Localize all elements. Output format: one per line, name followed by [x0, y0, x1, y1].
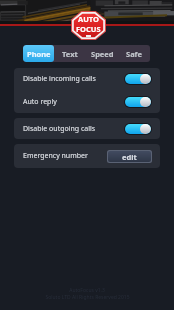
staticText: Safe	[126, 49, 143, 59]
button[interactable]: Disable incoming calls	[14, 68, 160, 90]
button[interactable]: Auto reply	[14, 90, 160, 113]
button[interactable]: Toggle Disable incoming calls	[125, 74, 151, 84]
button[interactable]: Toggle Auto reply	[125, 97, 151, 107]
staticText: FOCUS	[76, 24, 101, 34]
button[interactable]: Text	[54, 45, 86, 62]
button[interactable]: Disable outgoing calls	[14, 118, 160, 139]
staticText: Text	[62, 49, 78, 59]
button[interactable]: Toggle Disable outgoing calls	[125, 124, 151, 134]
staticText: Speed	[91, 49, 114, 59]
button[interactable]: Phone	[23, 45, 54, 62]
staticText: Disable outgoing calls	[23, 124, 96, 134]
staticText: Phone	[27, 49, 51, 59]
button[interactable]: Speed	[86, 45, 118, 62]
staticText: Soluto LTD All Rights Reserved 2015	[45, 294, 130, 301]
staticText: edit	[122, 152, 137, 162]
staticText: Auto reply	[23, 97, 57, 107]
staticText: AutoFocus v1.3	[69, 287, 105, 294]
staticText: Disable incoming calls	[23, 74, 96, 84]
button[interactable]: Safe	[118, 45, 150, 62]
staticText: Emergency number	[23, 151, 88, 161]
staticText: AUTO	[78, 14, 99, 24]
button[interactable]: edit	[108, 151, 151, 162]
